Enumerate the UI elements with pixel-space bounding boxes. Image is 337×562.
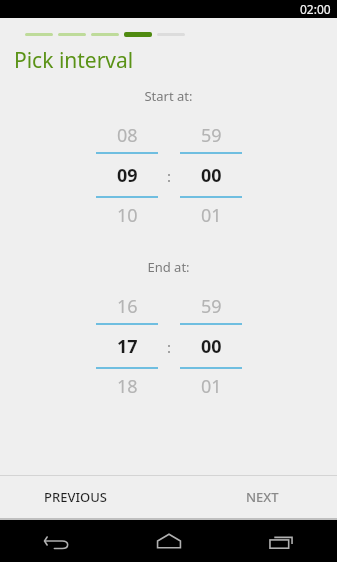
staticText: 16 — [117, 294, 138, 319]
button[interactable]: Minute — [180, 118, 242, 232]
button[interactable]: Back — [0, 520, 113, 562]
button[interactable]: NEXT — [232, 479, 293, 515]
staticText: 08 — [117, 123, 138, 148]
staticText: 59 — [201, 123, 222, 148]
button[interactable]: Hour — [96, 118, 158, 232]
button[interactable]: Hour — [96, 289, 158, 403]
button[interactable]: Home — [113, 520, 225, 562]
staticText: 00 — [201, 163, 222, 188]
staticText: 00 — [201, 334, 222, 359]
staticText: 17 — [117, 334, 138, 359]
button[interactable]: PREVIOUS — [30, 479, 121, 515]
staticText: 01 — [201, 374, 222, 399]
staticText: NEXT — [246, 488, 279, 506]
staticText: 18 — [117, 374, 138, 399]
staticText: 09 — [117, 163, 138, 188]
staticText: End at: — [147, 258, 190, 276]
button[interactable]: Minute — [180, 289, 242, 403]
staticText: : — [167, 337, 172, 357]
staticText: Pick interval — [14, 46, 134, 75]
button[interactable]: Recent apps — [225, 520, 337, 562]
staticText: 01 — [201, 203, 222, 228]
staticText: : — [167, 166, 172, 186]
staticText: Start at: — [144, 87, 193, 105]
staticText: 10 — [117, 203, 138, 228]
staticText: PREVIOUS — [44, 488, 107, 506]
staticText: 02:00 — [300, 1, 331, 17]
staticText: 59 — [201, 294, 222, 319]
